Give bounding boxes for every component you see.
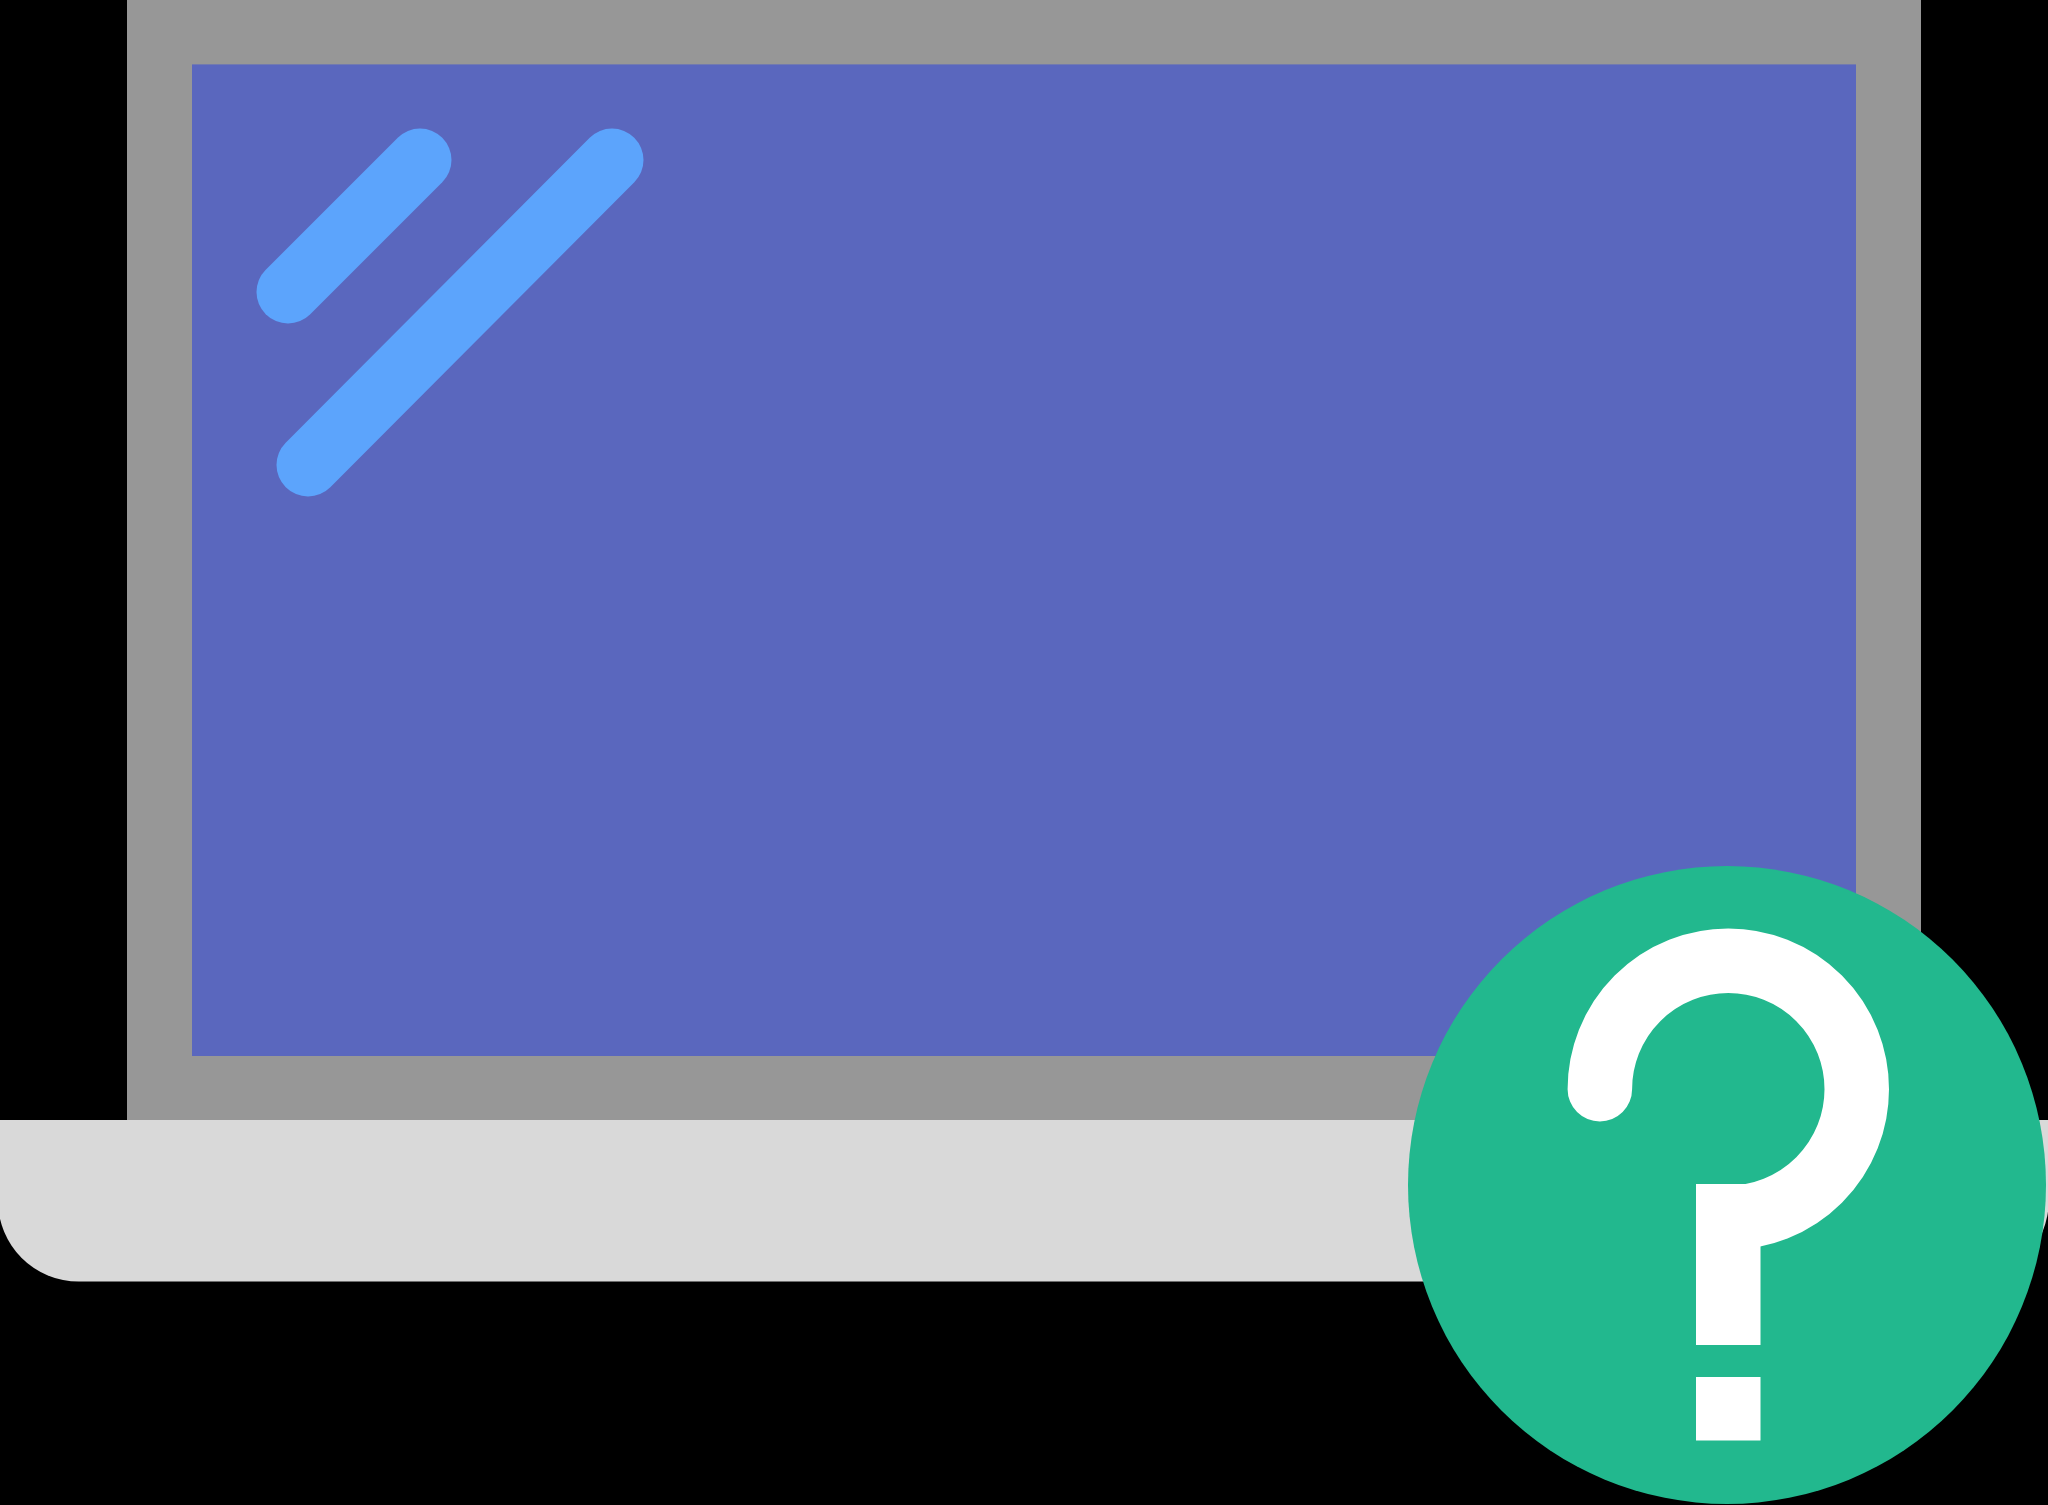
button[interactable]: Help [1408, 866, 2046, 1504]
